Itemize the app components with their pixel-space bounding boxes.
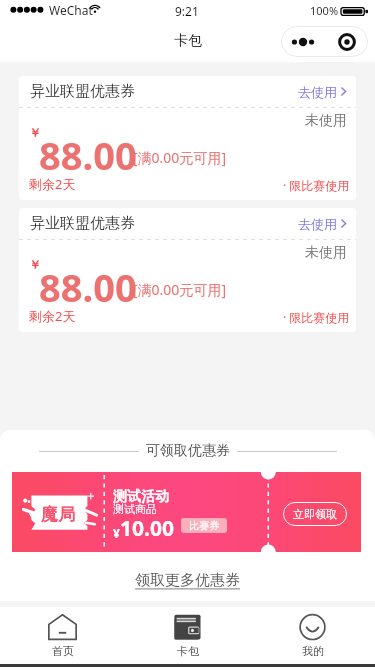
staticText: [满0.00元可用] xyxy=(133,148,226,167)
button[interactable]: Close mini program xyxy=(325,26,368,57)
staticText: 卡包 xyxy=(174,32,202,50)
button[interactable]: 异业联盟优惠券 xyxy=(19,76,356,200)
staticText: 异业联盟优惠券 xyxy=(30,214,135,233)
staticText: 未使用 xyxy=(305,112,347,130)
staticText: 88.00 xyxy=(39,129,137,181)
staticText: [满0.00元可用] xyxy=(133,280,226,299)
staticText: ¥ xyxy=(113,525,120,541)
button[interactable]: 我的 xyxy=(250,607,375,664)
staticText: 88.00 xyxy=(39,261,137,313)
button[interactable]: 魔局 xyxy=(12,472,361,552)
staticText: ￥ xyxy=(29,125,41,140)
staticText: · 限比赛使用 xyxy=(283,309,350,325)
staticText: 卡包 xyxy=(177,644,199,658)
staticText: 比赛券 xyxy=(189,519,219,532)
staticText: WeChat xyxy=(49,2,93,18)
staticText: 魔局 xyxy=(41,504,75,525)
staticText: 测试活动 xyxy=(113,488,169,506)
button[interactable]: 卡包 xyxy=(125,607,250,664)
staticText: · 限比赛使用 xyxy=(283,177,350,193)
staticText: 去使用 xyxy=(298,216,337,232)
staticText: 首页 xyxy=(52,644,74,658)
staticText: ￥ xyxy=(29,257,41,272)
staticText: 异业联盟优惠券 xyxy=(30,82,135,101)
staticText: 100% xyxy=(310,3,339,18)
staticText: 可领取优惠券 xyxy=(146,442,230,460)
button[interactable]: More options xyxy=(281,26,325,57)
staticText: 9:21 xyxy=(175,3,199,19)
staticText: 未使用 xyxy=(305,244,347,262)
staticText: 我的 xyxy=(302,644,324,658)
staticText: 剩余2天 xyxy=(29,307,76,325)
staticText: 立即领取 xyxy=(293,507,337,521)
staticText: 测试商品 xyxy=(113,502,157,516)
button[interactable]: 领取更多优惠券 xyxy=(135,571,240,590)
staticText: 剩余2天 xyxy=(29,175,76,193)
button[interactable]: 首页 xyxy=(0,607,125,664)
staticText: 10.00 xyxy=(120,514,174,543)
button[interactable]: 异业联盟优惠券 xyxy=(19,208,356,332)
staticText: 去使用 xyxy=(298,84,337,100)
button[interactable]: 立即领取 xyxy=(283,502,347,526)
